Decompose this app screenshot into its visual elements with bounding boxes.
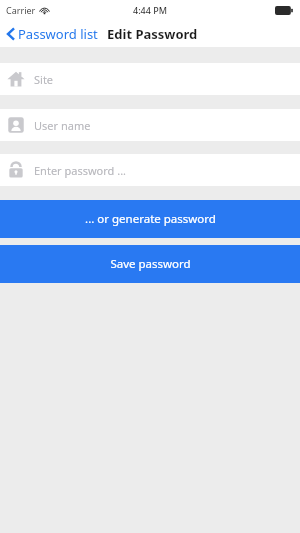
staticText: ... or generate password — [85, 211, 216, 227]
staticText: Save password — [110, 256, 191, 272]
staticText: Edit Password — [107, 25, 198, 43]
button[interactable]: Site — [0, 63, 300, 95]
button[interactable]: Save password — [0, 245, 300, 283]
staticText: User name — [34, 118, 91, 133]
staticText: Site — [34, 72, 54, 87]
staticText: Carrier — [6, 4, 36, 16]
staticText: Password list — [18, 25, 98, 43]
button[interactable]: User name — [0, 109, 300, 141]
button[interactable]: Enter password ... — [0, 154, 300, 186]
staticText: Enter password ... — [34, 163, 127, 178]
button[interactable]: ... or generate password — [0, 200, 300, 238]
staticText: 4:44 PM — [133, 4, 167, 16]
button[interactable]: Password list — [0, 22, 104, 46]
